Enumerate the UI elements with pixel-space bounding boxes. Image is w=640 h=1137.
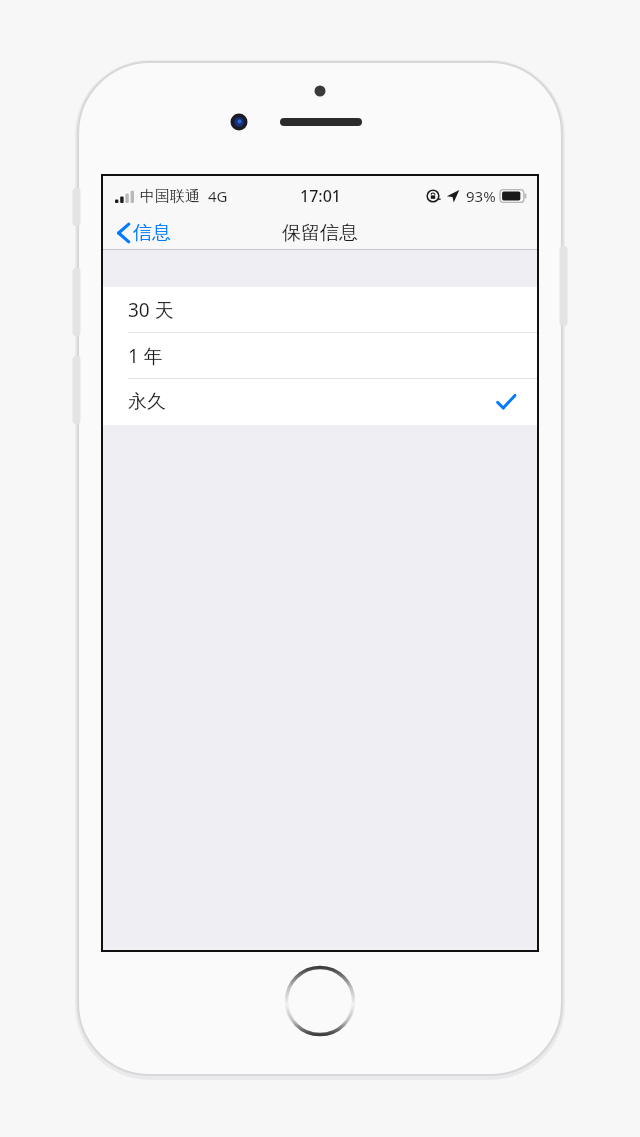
staticText: 17:01 (300, 185, 341, 207)
staticText: 1 年 (128, 343, 163, 369)
staticText: 30 天 (128, 297, 174, 323)
staticText: 永久 (128, 390, 166, 414)
staticText: 93% (466, 186, 496, 206)
other: Selected (496, 392, 516, 412)
staticText: 信息 (133, 221, 171, 245)
button[interactable]: 30 天 (103, 287, 537, 333)
staticText: 中国联通 (140, 187, 200, 206)
staticText: 4G (208, 186, 228, 206)
staticText: 保留信息 (282, 221, 358, 245)
button[interactable]: 永久 (103, 379, 537, 425)
button[interactable]: 1 年 (103, 333, 537, 379)
button[interactable]: 信息 (114, 219, 174, 247)
